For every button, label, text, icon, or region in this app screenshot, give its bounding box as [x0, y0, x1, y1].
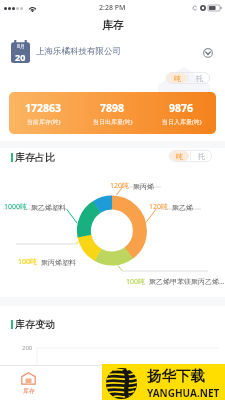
button[interactable] [57, 366, 113, 400]
staticText: 120吨 [149, 202, 169, 212]
staticText: 100吨 [18, 257, 38, 267]
button[interactable]: 吨 [170, 151, 189, 161]
staticText: 2:28 PM [99, 3, 126, 13]
staticText: 172863 [25, 101, 62, 115]
staticText: 库存 [23, 387, 35, 395]
staticText: 库存占比 [15, 151, 55, 164]
staticText: 库存 [102, 18, 124, 32]
button[interactable]: 172863 [9, 92, 216, 134]
staticText: 20 [15, 51, 26, 63]
staticText: 1000吨 [4, 202, 28, 212]
button[interactable]: 展开 [203, 48, 213, 58]
staticText: 吨 [176, 152, 183, 161]
button[interactable]: 托 [188, 72, 210, 84]
staticText: 当日入库量(吨) [162, 118, 202, 126]
staticText: 聚乙烯甲苯镁聚丙乙烯… [149, 277, 225, 287]
button[interactable] [113, 366, 169, 400]
staticText: 120吨 [110, 181, 130, 191]
staticText: 8月 [17, 43, 25, 50]
button[interactable] [169, 366, 225, 400]
staticText: 库存变动 [15, 318, 55, 331]
staticText: 吨 [174, 74, 181, 83]
staticText: 聚乙烯 [172, 203, 193, 212]
staticText: 当日出库量(吨) [93, 118, 133, 126]
staticText: 7898 [100, 101, 125, 115]
staticText: 托 [196, 74, 203, 83]
staticText: 托 [198, 152, 205, 161]
staticText: 聚丙烯塑料 [41, 258, 76, 267]
button[interactable]: 吨 [167, 73, 187, 83]
staticText: 聚乙烯塑料 [31, 203, 66, 212]
staticText: 扬华下载 [147, 367, 205, 385]
staticText: YANGHUA.NET [147, 386, 220, 400]
staticText: 200 [22, 344, 33, 352]
staticText: 聚丙烯 [133, 182, 154, 191]
staticText: 9876 [169, 101, 194, 115]
staticText: 上海乐橘科技有限公司 [36, 46, 121, 57]
staticText: 100吨 [126, 277, 146, 287]
button[interactable]: 库存 [0, 366, 57, 400]
staticText: 当前库存(吨) [27, 118, 61, 126]
button[interactable]: 托 [190, 150, 212, 162]
